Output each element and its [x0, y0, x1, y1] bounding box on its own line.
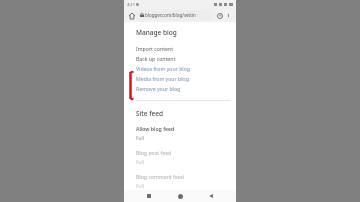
staticText: Full — [136, 183, 144, 190]
staticText: Videos from your blog — [136, 65, 191, 72]
staticText: Site feed — [136, 109, 164, 118]
staticText: Back up content — [136, 55, 176, 62]
button[interactable]: Blog comment feed — [136, 173, 230, 190]
staticText: Full — [136, 135, 144, 142]
button[interactable]: Videos from your blog — [136, 63, 230, 73]
button[interactable]: blogger.com/blog/settin — [140, 10, 211, 20]
staticText: Media from your blog — [136, 75, 189, 82]
button[interactable]: Home — [174, 190, 186, 202]
button[interactable]: History — [215, 11, 224, 20]
button[interactable]: Blog post feed — [136, 149, 230, 166]
button[interactable]: Recent apps — [143, 190, 155, 202]
staticText: Full — [136, 159, 144, 166]
button[interactable]: Import content — [136, 43, 230, 53]
button[interactable]: Allow blog feed — [136, 125, 230, 142]
button[interactable]: Home — [127, 11, 136, 20]
staticText: Import content — [136, 45, 174, 52]
button[interactable]: More options — [224, 11, 233, 20]
staticText: Manage blog — [136, 28, 177, 37]
staticText: Blog comment feed — [136, 173, 184, 180]
staticText: blogger.com/blog/settin — [145, 12, 196, 18]
staticText: Blog post feed — [136, 149, 172, 156]
button[interactable]: Back up content — [136, 53, 230, 63]
staticText: 4:21 — [127, 2, 135, 7]
button[interactable]: Media from your blog — [136, 73, 230, 83]
button[interactable]: Back — [205, 190, 217, 202]
button[interactable]: Remove your blog — [136, 83, 230, 93]
staticText: Allow blog feed — [136, 125, 175, 132]
staticText: Remove your blog — [136, 85, 181, 92]
